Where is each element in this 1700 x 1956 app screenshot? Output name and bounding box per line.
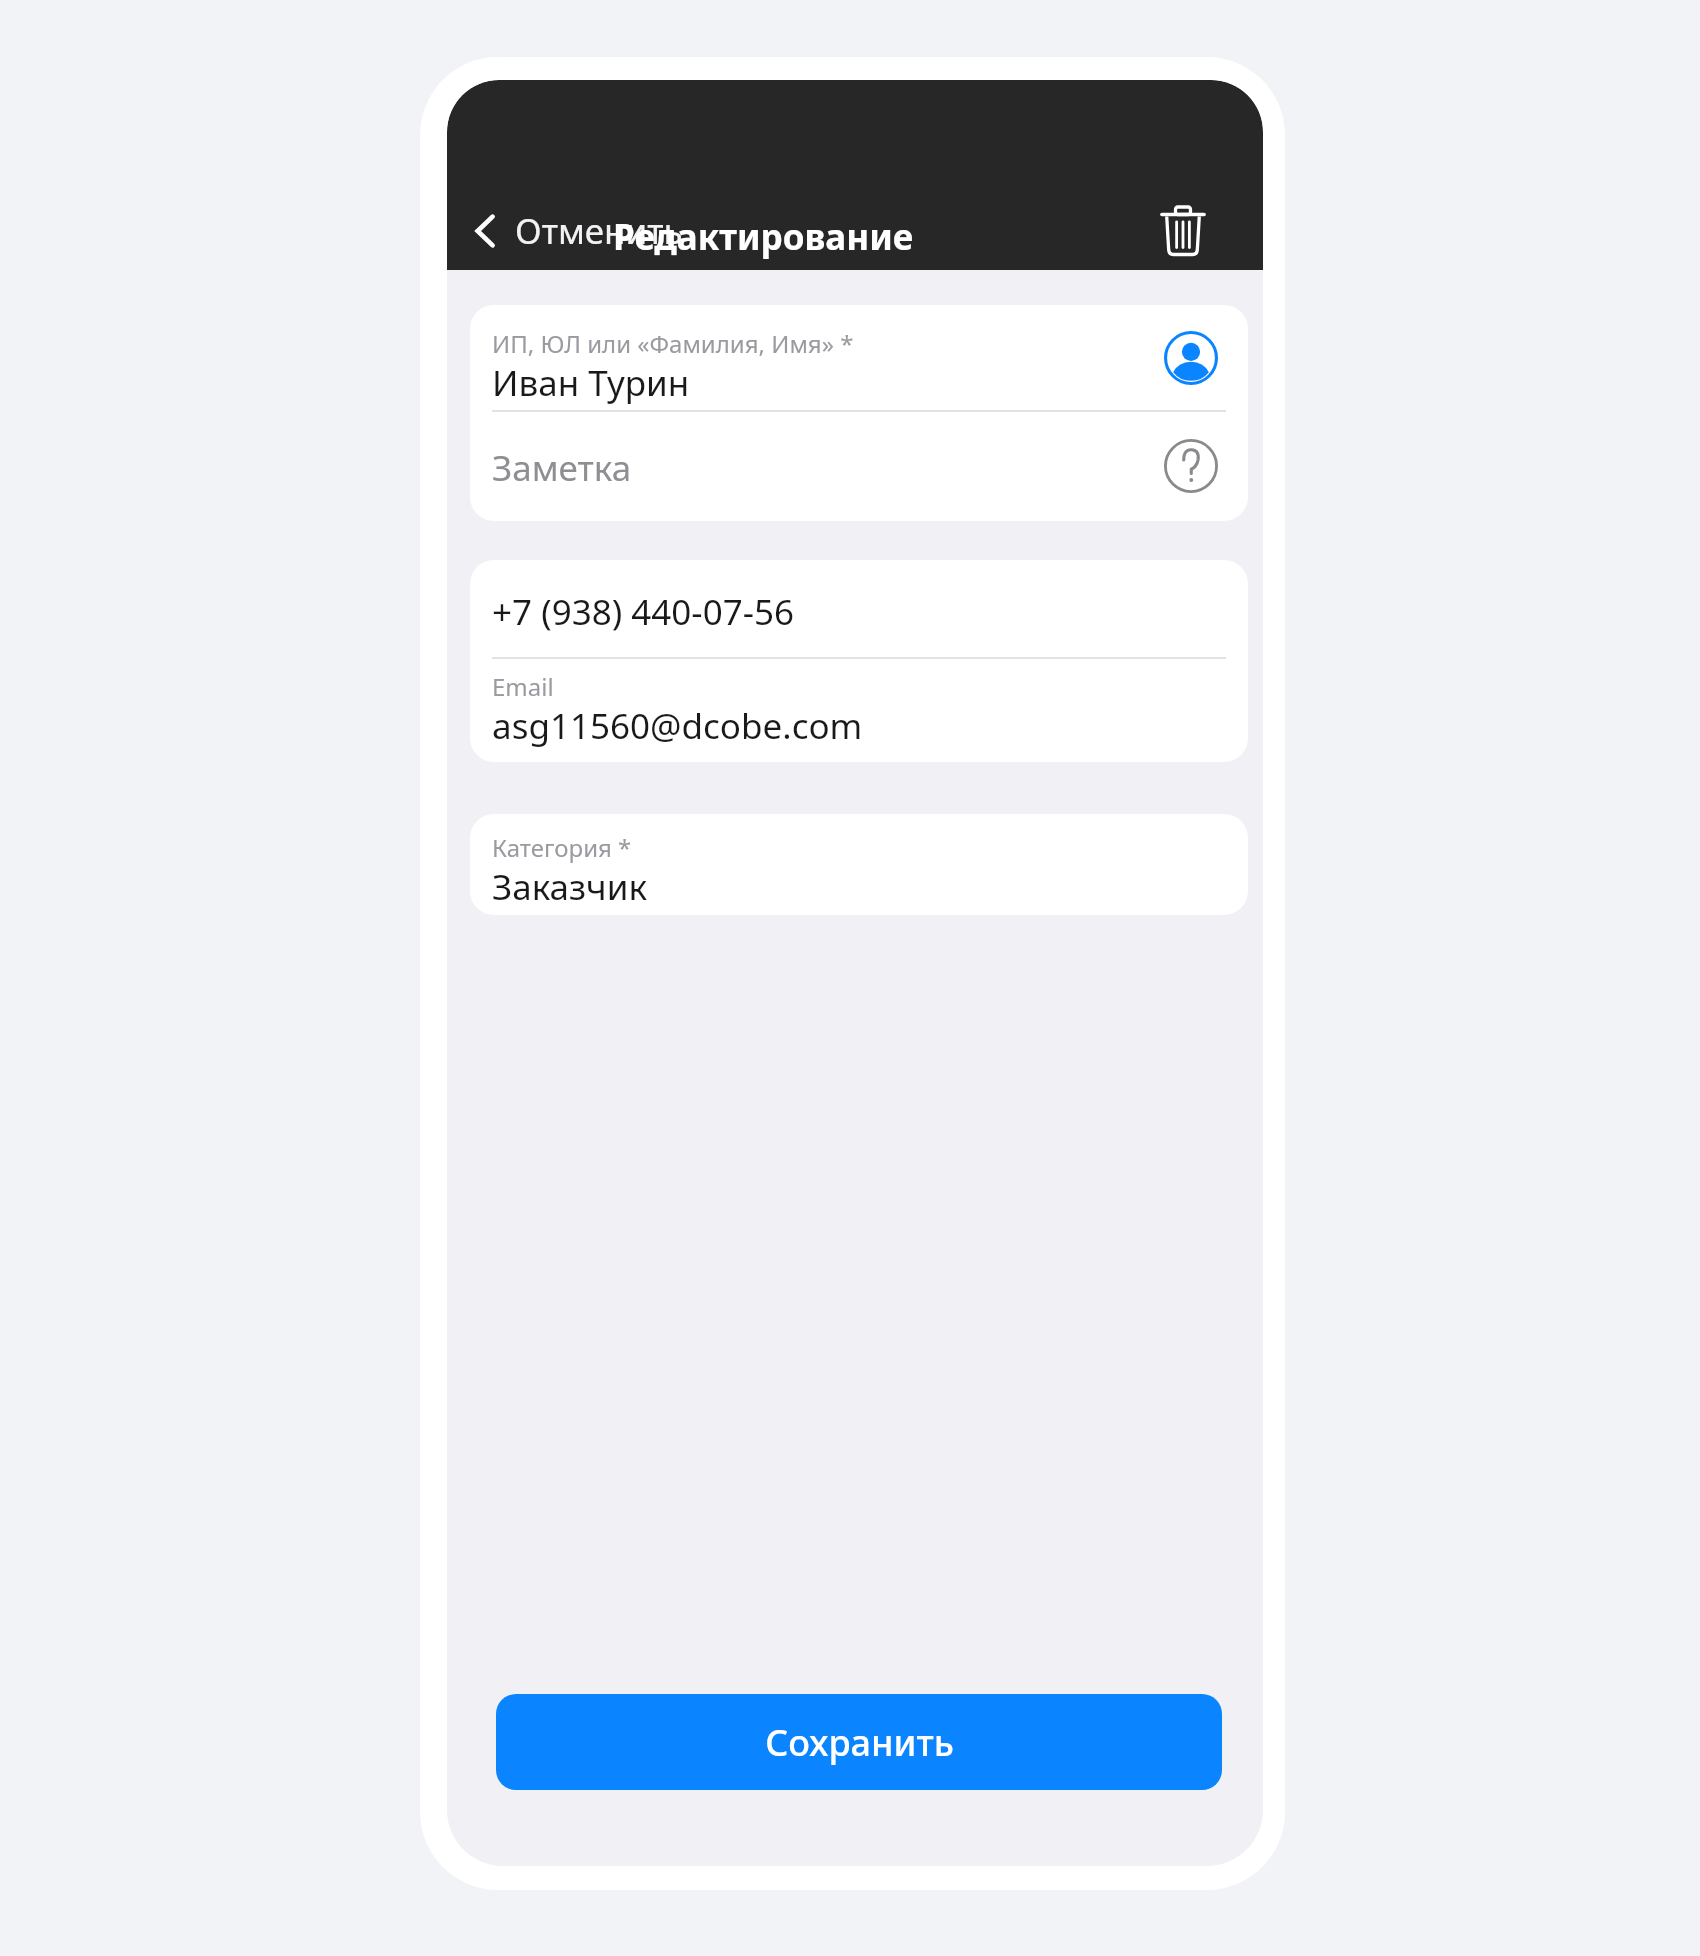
button[interactable]: Отменить bbox=[461, 200, 693, 262]
staticText: Категория * bbox=[492, 831, 632, 864]
staticText: +7 (938) 440-07-56 bbox=[492, 588, 794, 636]
button[interactable]: Сохранить bbox=[496, 1694, 1222, 1790]
button[interactable]: Email bbox=[470, 658, 1248, 762]
button[interactable]: ИП, ЮЛ или «Фамилия, Имя» * bbox=[470, 305, 1248, 410]
staticText: Сохранить bbox=[765, 1718, 954, 1767]
button[interactable]: Категория * bbox=[470, 814, 1248, 915]
button[interactable]: Справка bbox=[1160, 435, 1222, 497]
staticText: Заметка bbox=[492, 444, 632, 492]
staticText: Заказчик bbox=[492, 863, 648, 911]
staticText: asg11560@dcobe.com bbox=[492, 702, 863, 750]
staticText: Иван Турин bbox=[492, 359, 690, 407]
button[interactable]: Выбрать контакт bbox=[1160, 327, 1222, 389]
staticText: Отменить bbox=[515, 207, 683, 255]
staticText: ИП, ЮЛ или «Фамилия, Имя» * bbox=[492, 327, 854, 360]
button[interactable]: Удалить bbox=[1147, 195, 1219, 267]
button[interactable]: Заметка bbox=[470, 411, 1248, 521]
staticText: Редактирование bbox=[613, 213, 914, 261]
staticText: Email bbox=[492, 670, 554, 703]
button[interactable]: +7 (938) 440-07-56 bbox=[470, 560, 1248, 657]
